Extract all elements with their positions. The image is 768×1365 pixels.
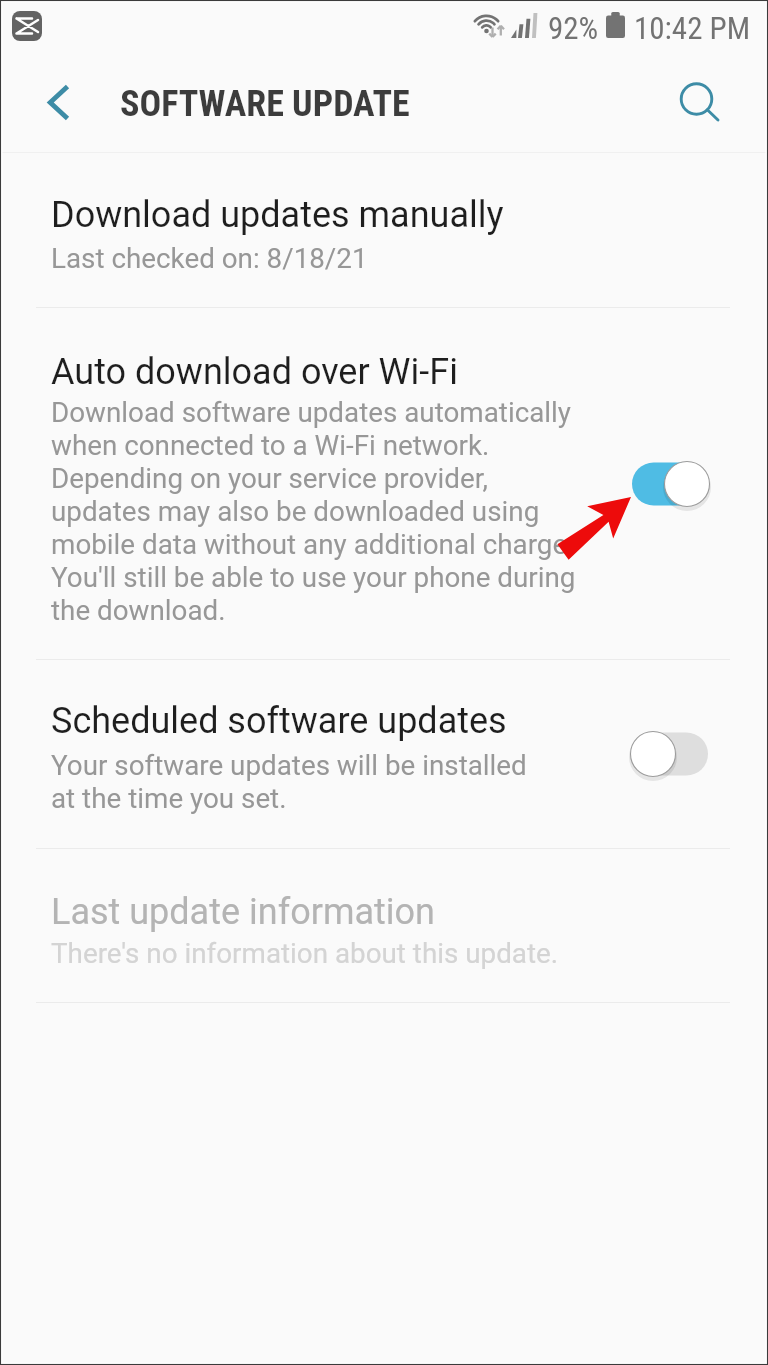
staticText: There's no information about this update… xyxy=(51,937,559,970)
staticText: 10:42 PM xyxy=(634,10,751,46)
button[interactable]: Switch off xyxy=(632,730,712,778)
staticText: Download software updates automatically … xyxy=(51,396,589,627)
button[interactable]: Navigate back xyxy=(29,73,87,131)
button[interactable]: Search xyxy=(668,71,726,129)
other: App notification xyxy=(12,11,42,41)
button[interactable] xyxy=(0,661,768,848)
button[interactable] xyxy=(0,309,768,659)
staticText: Scheduled software updates xyxy=(51,700,507,742)
staticText: Auto download over Wi-Fi xyxy=(51,351,458,393)
button[interactable]: Switch on xyxy=(632,460,712,508)
staticText: Last update information xyxy=(51,891,435,933)
staticText: Download updates manually xyxy=(51,194,504,236)
staticText: 92% xyxy=(548,10,599,46)
staticText: SOFTWARE UPDATE xyxy=(120,83,410,125)
staticText: Your software updates will be installed … xyxy=(51,749,551,815)
staticText: Last checked on: 8/18/21 xyxy=(51,242,368,275)
button[interactable] xyxy=(0,170,768,307)
